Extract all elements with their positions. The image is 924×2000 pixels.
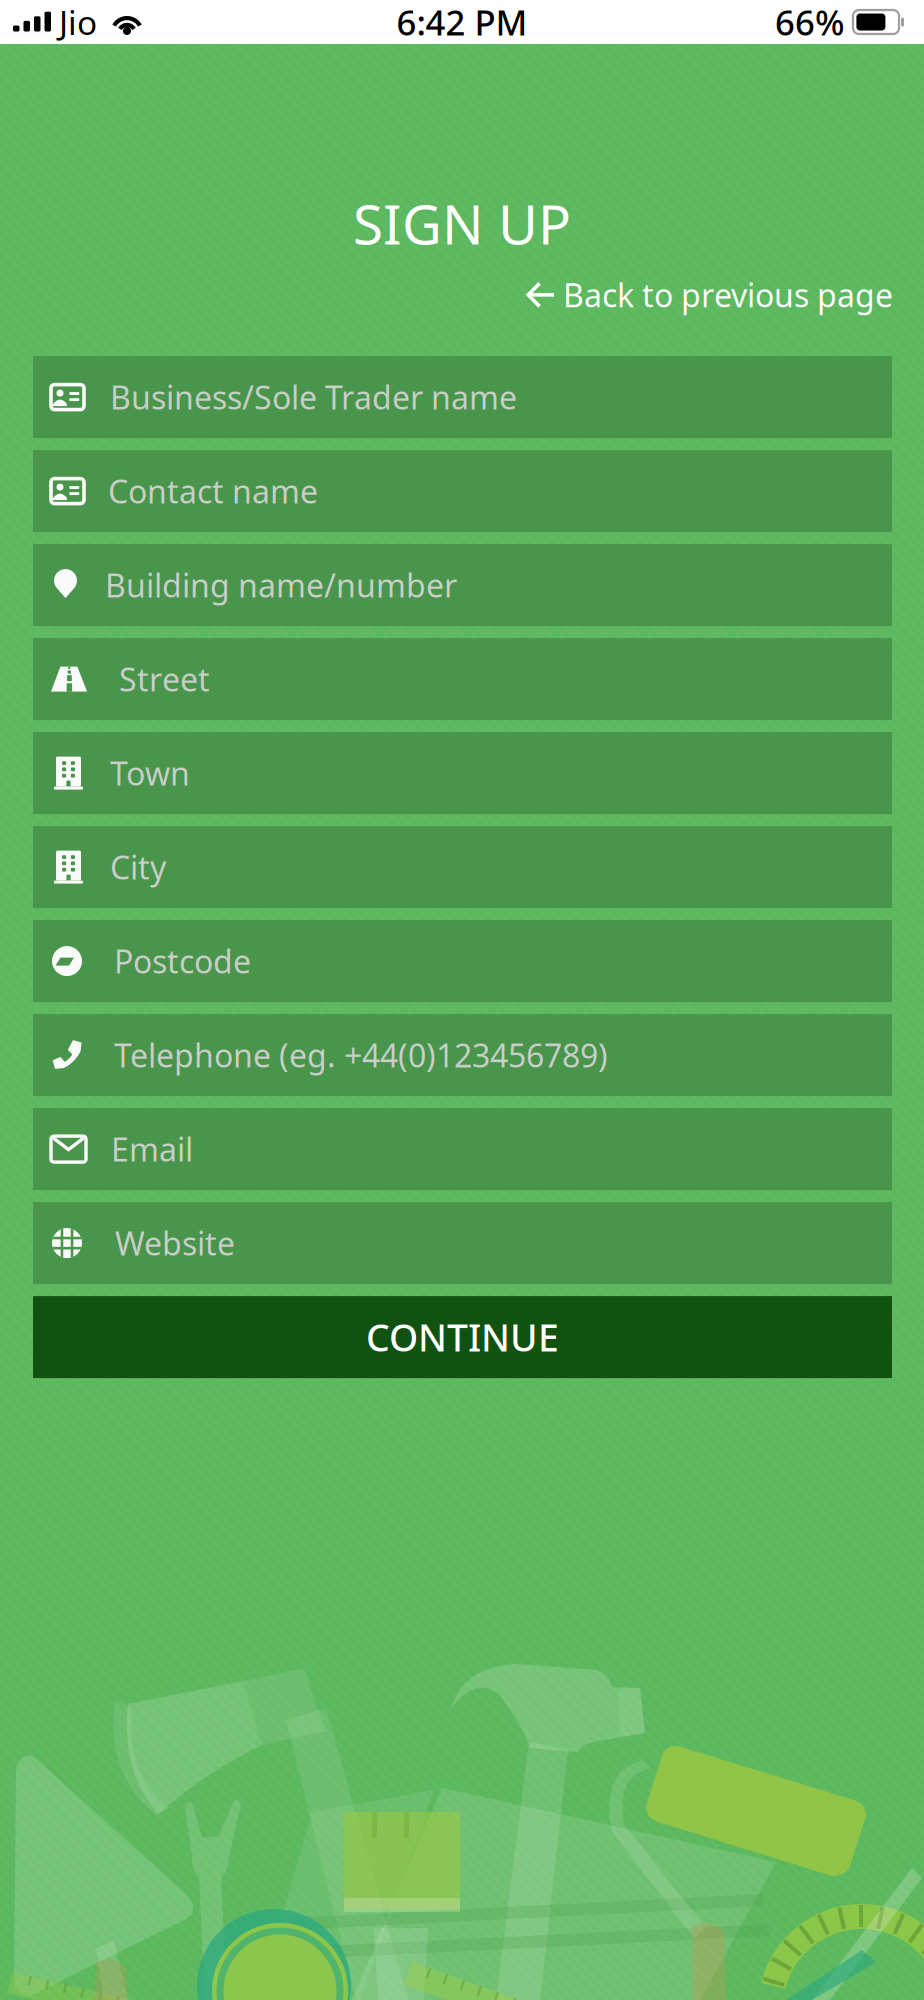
staticText: 6:42 PM (396, 0, 527, 45)
staticText: Back to previous page (563, 274, 893, 316)
button[interactable]: City (33, 826, 892, 908)
button[interactable]: Telephone (eg. +44(0)123456789) (33, 1014, 892, 1096)
button[interactable]: Building name/number (33, 544, 892, 626)
button[interactable]: Contact name (33, 450, 892, 532)
staticText: Town (110, 752, 190, 794)
staticText: Website (115, 1222, 235, 1264)
staticText: Telephone (eg. +44(0)123456789) (114, 1034, 608, 1076)
staticText: Postcode (114, 940, 251, 982)
staticText: Contact name (108, 470, 318, 512)
button[interactable]: Postcode (33, 920, 892, 1002)
button[interactable]: CONTINUE (33, 1296, 892, 1378)
staticText: Email (111, 1128, 193, 1170)
button[interactable]: Website (33, 1202, 892, 1284)
staticText: Building name/number (105, 564, 457, 606)
staticText: Street (119, 658, 210, 700)
staticText: City (110, 846, 166, 888)
button[interactable]: Back to previous page (526, 274, 924, 316)
button[interactable]: Town (33, 732, 892, 814)
staticText: Business/Sole Trader name (110, 376, 517, 418)
staticText: CONTINUE (366, 1312, 559, 1362)
button[interactable]: Email (33, 1108, 892, 1190)
staticText: 66% (775, 0, 845, 45)
staticText: SIGN UP (353, 187, 571, 260)
staticText: Jio (59, 0, 97, 44)
button[interactable]: Street (33, 638, 892, 720)
button[interactable]: Business/Sole Trader name (33, 356, 892, 438)
